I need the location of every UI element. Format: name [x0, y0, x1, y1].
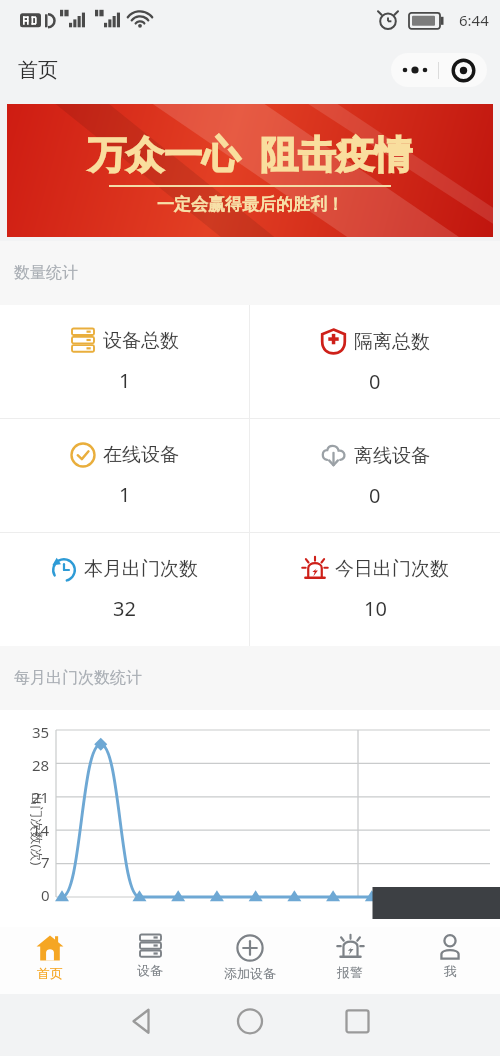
staticText: 本月出门次数 — [84, 557, 198, 581]
button[interactable]: More options — [391, 53, 438, 87]
button[interactable]: 今日出门次数 — [250, 533, 500, 646]
staticText: 28 — [32, 755, 50, 775]
button[interactable]: 隔离总数 — [250, 305, 500, 418]
staticText: 出门次数(次) — [27, 792, 45, 865]
staticText: 首页 — [18, 58, 58, 83]
staticText: 设备总数 — [103, 329, 179, 353]
staticText: 21 — [32, 787, 50, 807]
button[interactable]: 离线设备 — [250, 419, 500, 532]
staticText: 每月出门次数统计 — [14, 668, 142, 688]
staticText: 在线设备 — [103, 443, 179, 467]
staticText: 添加设备 — [224, 965, 276, 981]
staticText: 32 — [113, 595, 136, 622]
staticText: 35 — [32, 722, 50, 742]
button[interactable]: 在线设备 — [0, 419, 249, 532]
staticText: 6:44 — [459, 10, 489, 30]
staticText: 7 — [41, 852, 50, 872]
staticText: 今日出门次数 — [335, 557, 449, 581]
staticText: 14 — [32, 820, 50, 840]
button[interactable]: 添加设备 — [200, 927, 300, 994]
button[interactable]: 本月出门次数 — [0, 533, 249, 646]
staticText: 首页 — [37, 965, 63, 981]
staticText: 0 — [41, 885, 50, 905]
staticText: 设备 — [137, 962, 163, 978]
button[interactable]: 设备 — [100, 927, 200, 994]
button[interactable]: 我 — [400, 927, 500, 994]
staticText: 我 — [444, 963, 457, 979]
staticText: 离线设备 — [354, 444, 430, 468]
button[interactable]: Close — [439, 53, 487, 87]
staticText: 10 — [364, 595, 387, 622]
staticText: 报警 — [337, 964, 363, 980]
staticText: 万众一心 阻击疫情 — [88, 127, 412, 179]
button[interactable]: 首页 — [0, 927, 100, 994]
button[interactable]: 设备总数 — [0, 305, 249, 418]
button[interactable]: 报警 — [300, 927, 400, 994]
staticText: 隔离总数 — [354, 330, 430, 354]
staticText: 1 — [119, 481, 131, 508]
staticText: 0 — [369, 482, 381, 509]
staticText: 0 — [369, 368, 381, 395]
staticText: 1 — [119, 367, 131, 394]
staticText: 一定会赢得最后的胜利！ — [157, 194, 344, 215]
staticText: 数量统计 — [14, 263, 78, 283]
